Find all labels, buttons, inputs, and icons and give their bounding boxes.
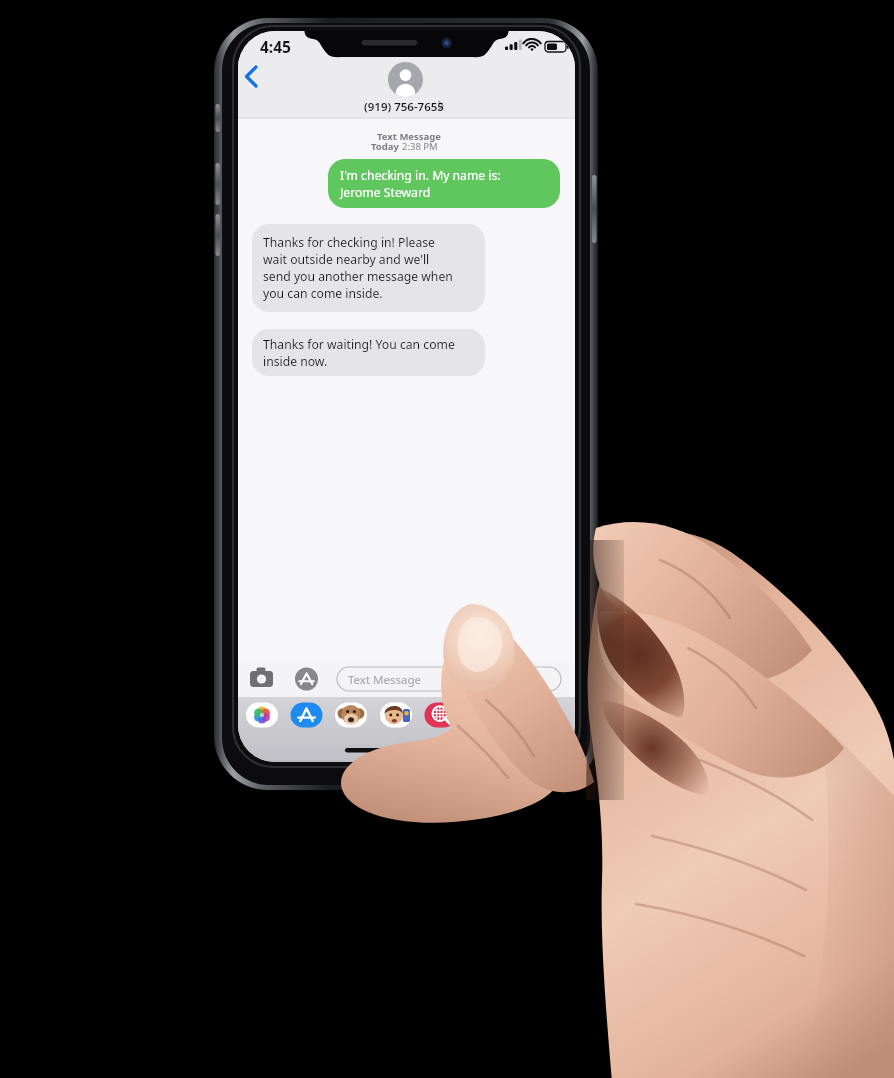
button[interactable]: Memoji <box>380 703 412 728</box>
staticText: 4:45 <box>260 36 291 57</box>
button[interactable] <box>337 667 561 691</box>
button[interactable]: Memoji monkey <box>335 703 367 728</box>
staticText: Today <box>371 140 402 153</box>
button[interactable]: Photos <box>246 703 278 728</box>
button[interactable]: Images search <box>425 703 457 728</box>
button[interactable] <box>238 56 575 116</box>
staticText: Text Message <box>348 672 422 688</box>
staticText: Thanks for checking in! Please wait outs… <box>263 234 453 302</box>
staticText: (919) 756-7655 <box>364 99 444 115</box>
staticText: Text Message <box>377 130 441 143</box>
button[interactable]: Thanks for waiting! You can come inside … <box>252 329 485 376</box>
button[interactable]: Home indicator <box>345 744 467 756</box>
staticText: 2:38 PM <box>402 140 438 153</box>
button[interactable]: Thanks for checking in! Please wait outs… <box>252 224 485 312</box>
staticText: Thanks for waiting! You can come inside … <box>263 336 455 370</box>
staticText: I'm checking in. My name is: Jerome Stew… <box>340 167 501 201</box>
button[interactable]: Take photo <box>248 665 276 693</box>
button[interactable]: App Store <box>295 667 319 691</box>
button[interactable]: App Store <box>291 703 323 728</box>
button[interactable]: Back <box>246 60 272 94</box>
button[interactable]: I'm checking in. My name is: Jerome Stew… <box>328 159 560 208</box>
button[interactable]: Music <box>469 703 501 728</box>
